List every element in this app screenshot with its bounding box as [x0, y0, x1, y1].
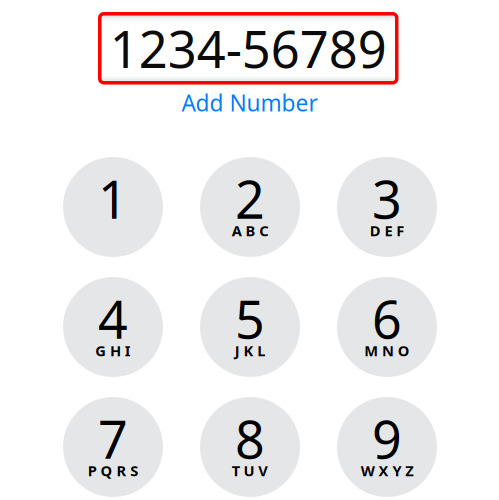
button[interactable]: 8: [200, 397, 300, 497]
staticText: PQRS: [88, 461, 138, 480]
staticText: MNO: [364, 341, 410, 360]
staticText: 9: [372, 404, 402, 473]
button[interactable]: 5: [200, 277, 300, 377]
staticText: WXYZ: [361, 461, 413, 480]
staticText: 8: [235, 404, 265, 473]
staticText: ABC: [232, 221, 268, 240]
button[interactable]: 4: [63, 277, 163, 377]
button[interactable]: 7: [63, 397, 163, 497]
staticText: 3: [372, 164, 402, 233]
staticText: 1234-56789: [110, 15, 387, 82]
staticText: 1: [98, 164, 128, 233]
staticText: 7: [98, 404, 128, 473]
button[interactable]: 2: [200, 157, 300, 257]
button[interactable]: 3: [337, 157, 437, 257]
button[interactable]: Add Number: [159, 89, 339, 117]
button[interactable]: 6: [337, 277, 437, 377]
button[interactable]: 9: [337, 397, 437, 497]
staticText: 6: [372, 284, 402, 353]
staticText: 4: [98, 284, 128, 353]
button[interactable]: 1: [63, 157, 163, 257]
staticText: TUV: [232, 461, 268, 480]
staticText: DEF: [370, 221, 404, 240]
staticText: JKL: [235, 341, 265, 360]
staticText: 2: [235, 164, 265, 233]
staticText: GHI: [95, 341, 131, 360]
staticText: 5: [235, 284, 265, 353]
staticText: Add Number: [181, 88, 317, 118]
